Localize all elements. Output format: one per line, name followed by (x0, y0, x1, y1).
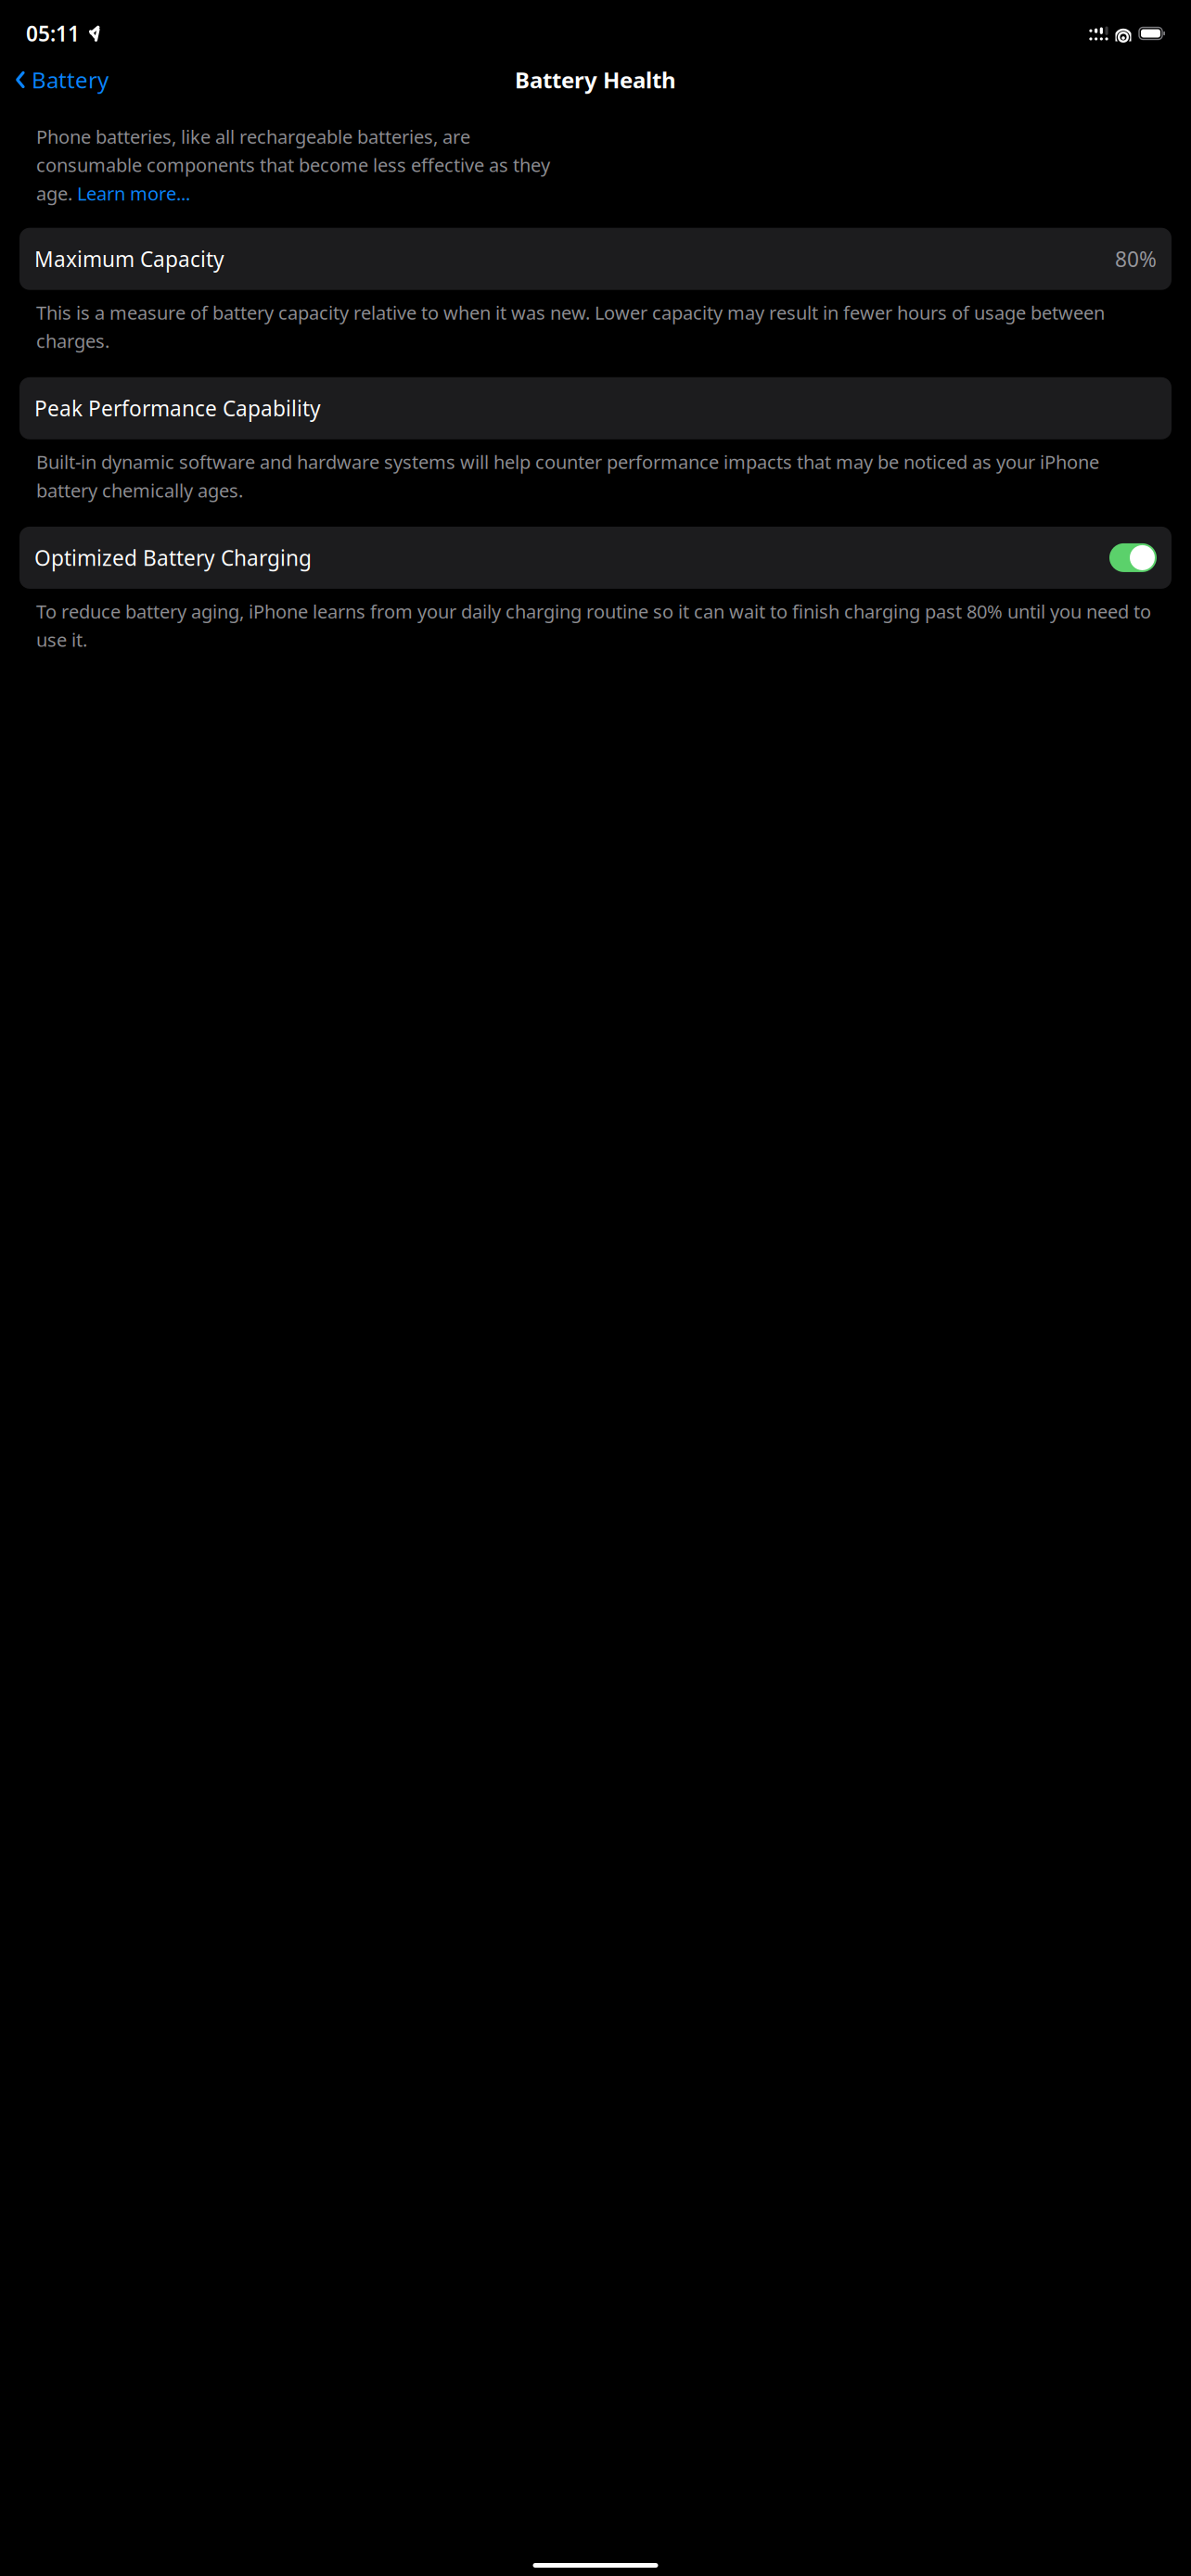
staticText: This is a measure of battery capacity re… (36, 300, 1105, 353)
button[interactable]: Peak Performance Capability (19, 377, 1172, 439)
button[interactable]: Battery (7, 59, 116, 100)
staticText: age. (36, 181, 77, 206)
button[interactable]: Learn more... (77, 181, 190, 206)
staticText: Optimized Battery Charging (34, 544, 312, 572)
button[interactable]: Maximum Capacity (19, 228, 1172, 290)
staticText: Learn more... (77, 181, 190, 206)
staticText: 05:11 (26, 19, 80, 47)
staticText: consumable components that become less e… (36, 153, 550, 177)
staticText: To reduce battery aging, iPhone learns f… (36, 599, 1151, 652)
staticText: 80% (1115, 245, 1157, 273)
staticText: Battery (32, 65, 109, 95)
staticText: Battery Health (515, 65, 676, 95)
staticText: Maximum Capacity (34, 245, 224, 273)
button[interactable]: Optimized Battery Charging (19, 527, 1172, 589)
staticText: Built-in dynamic software and hardware s… (36, 450, 1099, 502)
staticText: Phone batteries, like all rechargeable b… (36, 124, 470, 149)
staticText: Peak Performance Capability (34, 394, 321, 422)
